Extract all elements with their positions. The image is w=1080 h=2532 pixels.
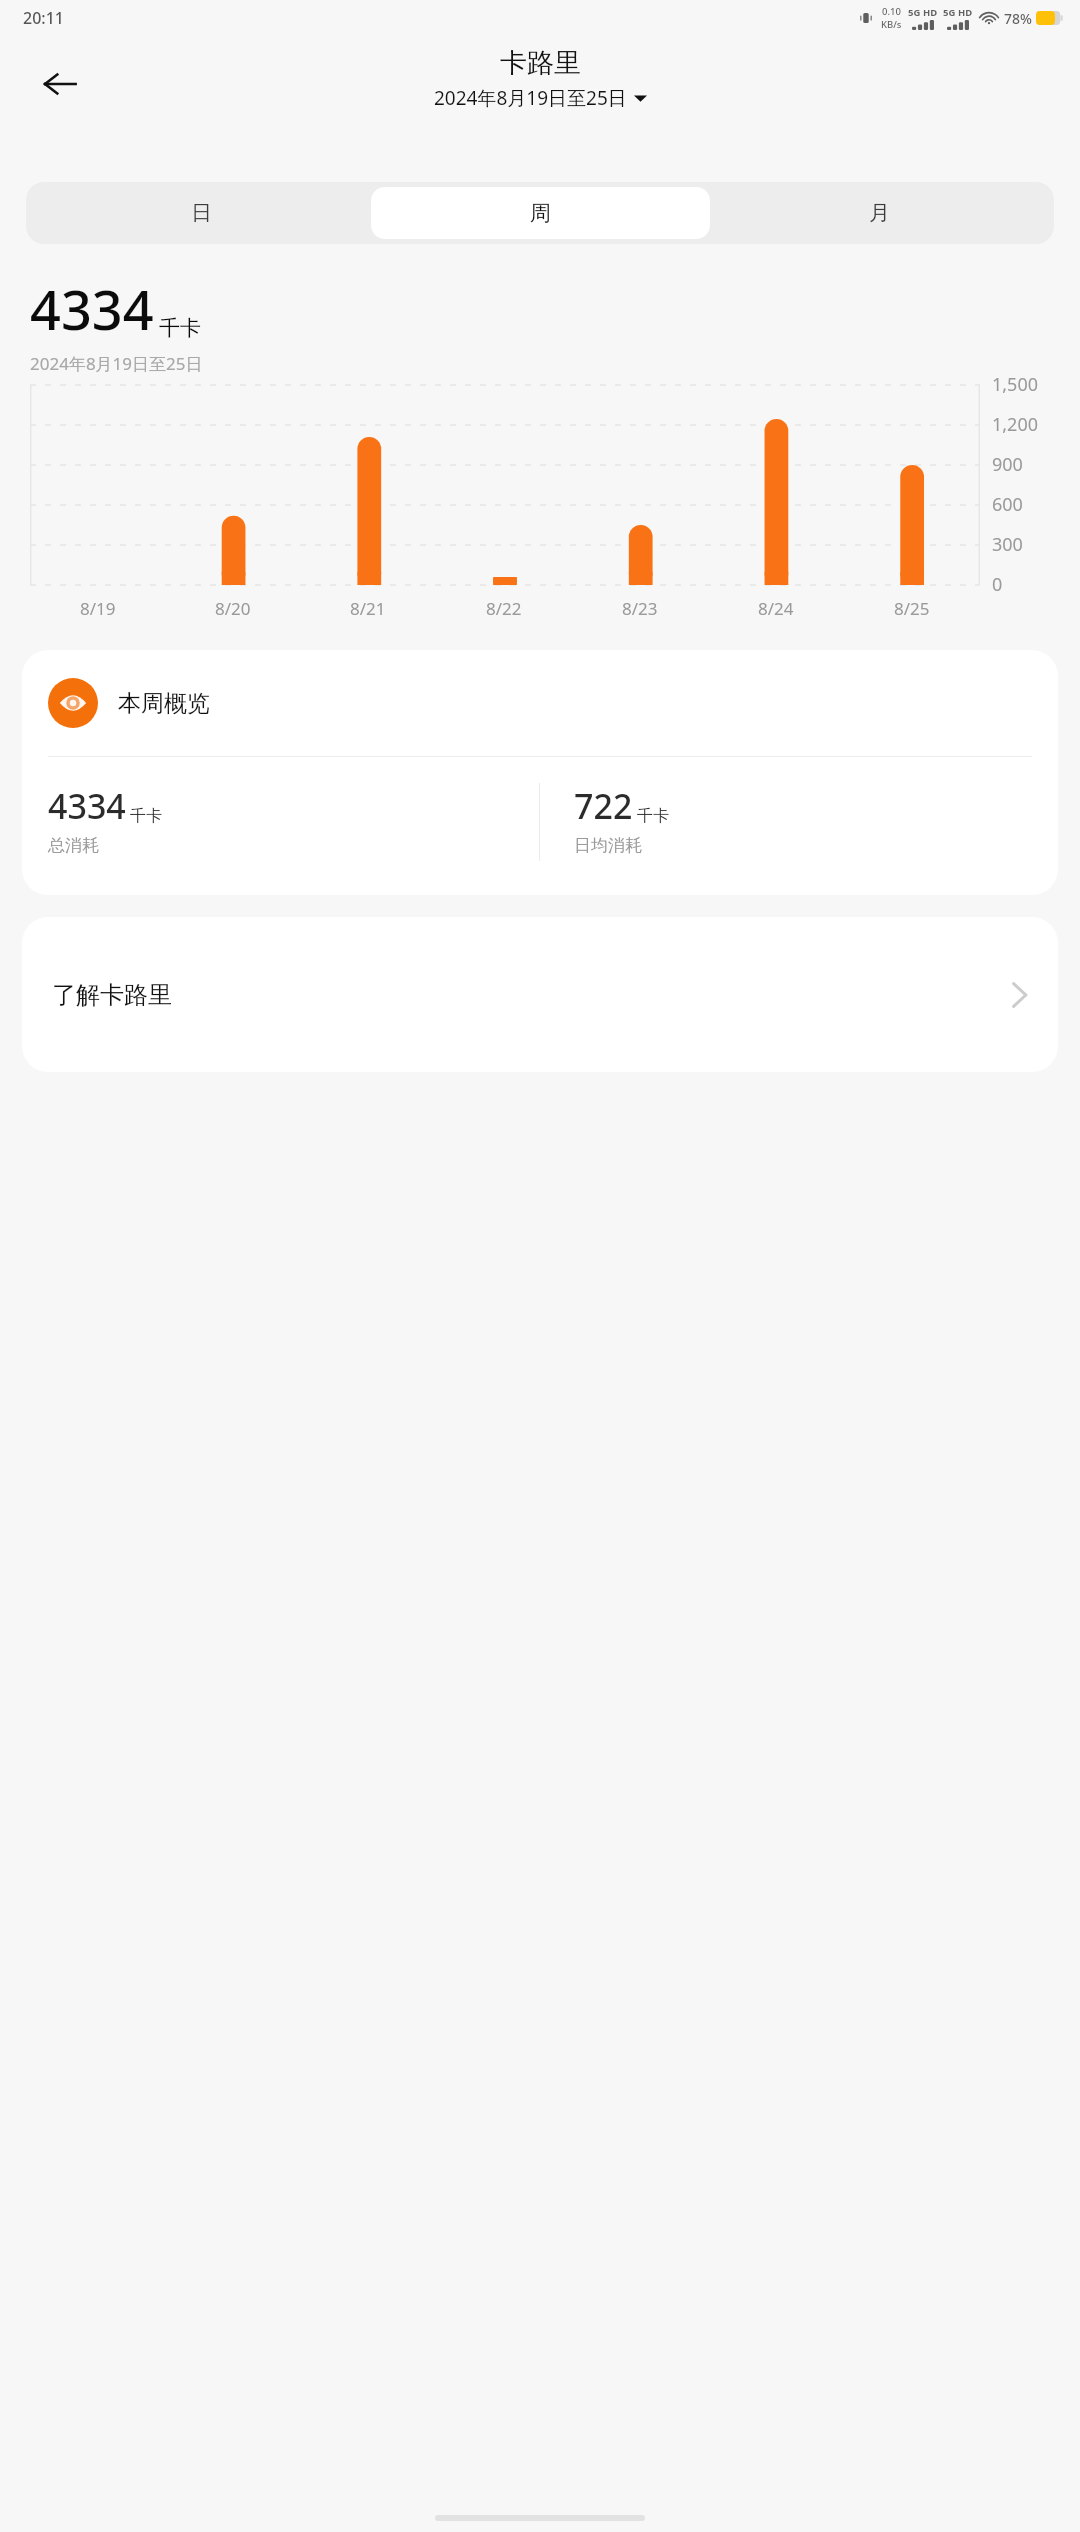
staticText: HD: [923, 6, 938, 19]
staticText: 8/24: [758, 597, 794, 620]
staticText: 千卡: [130, 806, 162, 826]
staticText: 600: [992, 492, 1023, 517]
button[interactable]: 月: [710, 187, 1049, 239]
staticText: 5G: [943, 6, 956, 19]
staticText: 4334: [30, 272, 154, 346]
staticText: 8/22: [486, 597, 522, 620]
button[interactable]: 日: [31, 187, 371, 239]
staticText: 300: [992, 532, 1023, 557]
staticText: 卡路里: [500, 46, 581, 80]
staticText: 周: [530, 200, 551, 226]
staticText: KB/s: [881, 18, 902, 31]
staticText: 日: [191, 200, 212, 226]
staticText: 4334: [48, 783, 126, 829]
staticText: HD: [958, 6, 973, 19]
staticText: 本周概览: [118, 689, 210, 718]
staticText: 2024年8月19日至25日: [434, 85, 627, 111]
staticText: 78%: [1004, 9, 1032, 28]
staticText: 722: [574, 783, 633, 829]
staticText: 8/19: [80, 597, 116, 620]
staticText: 900: [992, 452, 1023, 477]
staticText: 千卡: [159, 315, 201, 341]
staticText: 8/21: [350, 597, 386, 620]
staticText: 千卡: [637, 806, 669, 826]
staticText: 月: [869, 200, 890, 226]
button[interactable]: 本周概览: [22, 650, 1058, 895]
staticText: 日均消耗: [574, 835, 642, 856]
staticText: 了解卡路里: [52, 980, 1010, 1010]
staticText: 1,500: [992, 372, 1039, 397]
staticText: 8/23: [622, 597, 658, 620]
staticText: 0.10: [882, 5, 901, 18]
button[interactable]: 周: [371, 187, 710, 239]
button[interactable]: 了解卡路里: [22, 917, 1058, 1072]
staticText: 8/20: [215, 597, 251, 620]
staticText: 2024年8月19日至25日: [30, 352, 203, 375]
staticText: 5G: [908, 6, 921, 19]
staticText: 8/25: [894, 597, 930, 620]
staticText: 1,200: [992, 412, 1039, 437]
staticText: 总消耗: [48, 835, 99, 856]
staticText: 0: [992, 572, 1003, 597]
button[interactable]: Back: [28, 52, 92, 116]
button[interactable]: 2024年8月19日至25日: [434, 85, 647, 111]
staticText: 20:11: [23, 7, 64, 29]
